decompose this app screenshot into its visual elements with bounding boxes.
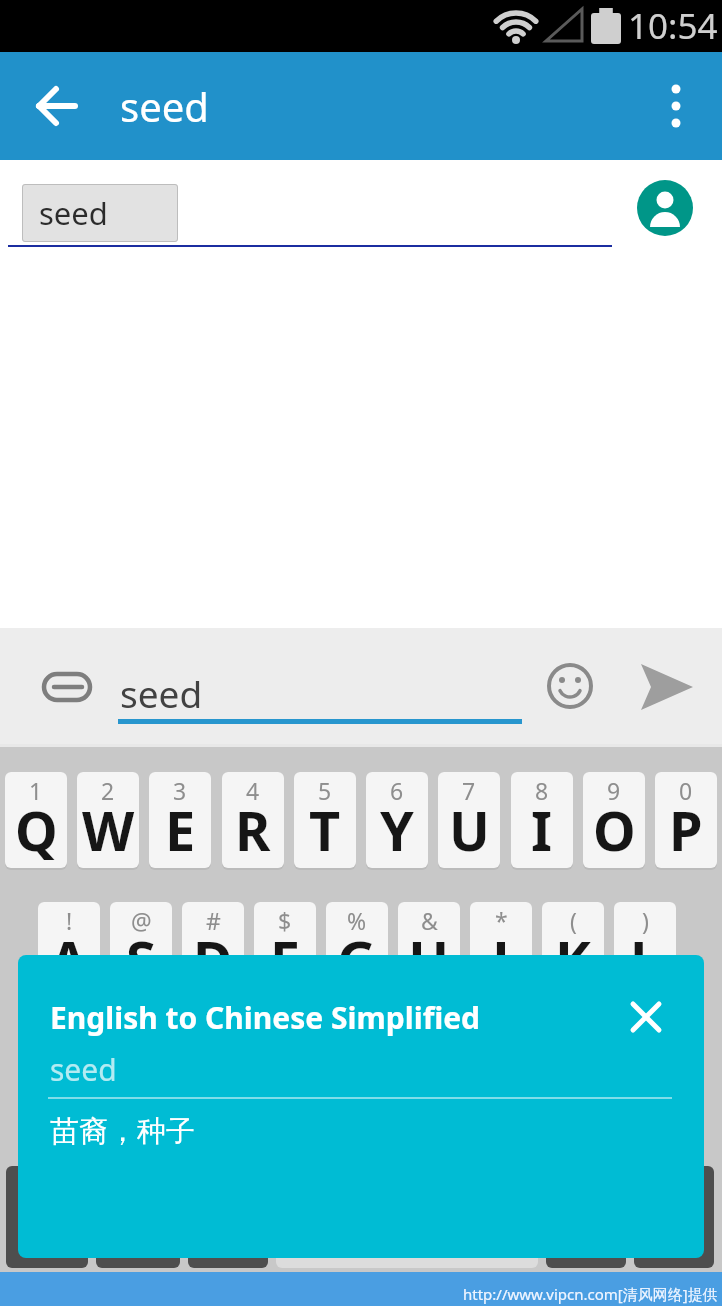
staticText: ( — [570, 905, 577, 936]
staticText: seed — [120, 79, 209, 133]
staticText: % — [347, 905, 367, 936]
staticText: O — [593, 793, 636, 867]
staticText: & — [421, 905, 438, 936]
button[interactable] — [38, 658, 96, 716]
button[interactable]: % — [326, 902, 388, 998]
button[interactable]: seed — [22, 184, 178, 242]
staticText: E — [165, 793, 196, 867]
staticText: English to Chinese Simplified — [50, 997, 481, 1038]
button[interactable]: 1 — [5, 772, 67, 868]
staticText: @ — [131, 905, 152, 936]
staticText: 苗裔，种子 — [50, 1113, 195, 1150]
staticText: K — [555, 923, 591, 997]
button[interactable]: & — [398, 902, 460, 998]
button[interactable] — [24, 73, 90, 139]
staticText: P — [669, 793, 703, 867]
staticText: W — [82, 793, 135, 867]
button[interactable]: ( — [542, 902, 604, 998]
button[interactable]: @ — [110, 902, 172, 998]
staticText: U — [449, 793, 490, 867]
button[interactable]: 9 — [583, 772, 645, 868]
staticText: A — [50, 923, 88, 997]
staticText: G — [337, 923, 377, 997]
staticText: 5 — [318, 775, 332, 806]
staticText: J — [492, 923, 510, 997]
staticText: 7 — [462, 775, 476, 806]
staticText: S — [126, 923, 156, 997]
button[interactable] — [542, 658, 598, 714]
button[interactable]: # — [182, 902, 244, 998]
staticText: Q — [15, 793, 58, 867]
button[interactable]: 0 — [655, 772, 717, 868]
staticText: L — [630, 923, 661, 997]
staticText: T — [309, 793, 341, 867]
button[interactable]: 5 — [294, 772, 356, 868]
staticText: D — [193, 923, 233, 997]
staticText: seed — [120, 668, 203, 718]
staticText: ! — [66, 905, 73, 936]
button[interactable]: $ — [254, 902, 316, 998]
staticText: seed — [39, 192, 108, 234]
staticText: R — [235, 793, 271, 867]
staticText: 1 — [29, 775, 43, 806]
staticText: Y — [380, 793, 414, 867]
staticText: ) — [642, 905, 649, 936]
staticText: 8 — [535, 775, 549, 806]
staticText: 9 — [607, 775, 621, 806]
staticText: 10:54 — [628, 2, 718, 50]
staticText: I — [531, 793, 553, 867]
staticText: 6 — [390, 775, 404, 806]
button[interactable]: ) — [614, 902, 676, 998]
button[interactable]: 6 — [366, 772, 428, 868]
staticText: H — [408, 923, 450, 997]
staticText: 2 — [101, 775, 115, 806]
button[interactable]: 8 — [511, 772, 573, 868]
button[interactable] — [626, 997, 666, 1037]
staticText: 4 — [246, 775, 260, 806]
button[interactable]: ! — [38, 902, 100, 998]
button[interactable]: 4 — [222, 772, 284, 868]
button[interactable]: * — [470, 902, 532, 998]
staticText: http://www.vipcn.com[清风网络]提供 — [463, 1284, 718, 1304]
staticText: $ — [278, 905, 292, 936]
button[interactable] — [644, 74, 708, 138]
button[interactable]: 3 — [149, 772, 211, 868]
staticText: * — [495, 905, 508, 936]
staticText: 3 — [173, 775, 187, 806]
staticText: seed — [50, 1049, 117, 1090]
staticText: F — [270, 923, 300, 997]
button[interactable]: 7 — [438, 772, 500, 868]
button[interactable] — [636, 656, 698, 718]
staticText: 0 — [679, 775, 693, 806]
staticText: # — [206, 905, 221, 936]
button[interactable] — [637, 180, 693, 236]
button[interactable]: 2 — [77, 772, 139, 868]
